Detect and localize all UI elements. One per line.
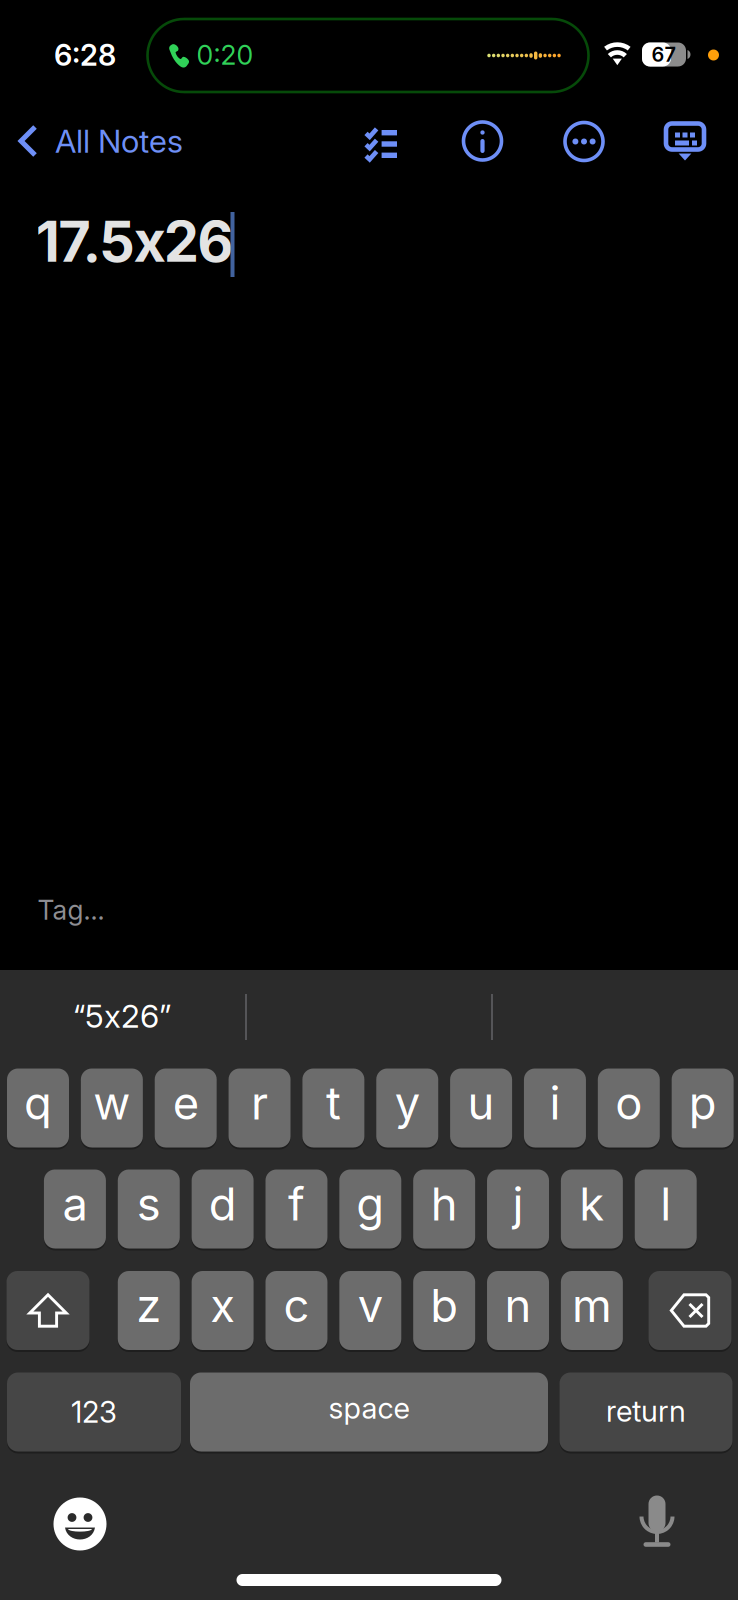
staticText: v (358, 1278, 383, 1333)
staticText: t (326, 1076, 341, 1130)
button[interactable]: e (155, 1067, 217, 1148)
button[interactable]: All Notes (0, 109, 200, 173)
staticText: n (504, 1278, 531, 1333)
button[interactable]: t (302, 1067, 364, 1148)
button[interactable]: Hide Keyboard (654, 109, 716, 175)
staticText: 67 (651, 42, 675, 67)
button[interactable]: h (413, 1168, 475, 1249)
staticText: m (572, 1278, 612, 1333)
button[interactable]: y (376, 1067, 438, 1148)
staticText: f (288, 1177, 305, 1231)
staticText: 17.5x26 (36, 208, 233, 275)
staticText: r (251, 1076, 268, 1130)
staticText: Tag... (37, 894, 104, 926)
staticText: c (283, 1278, 309, 1333)
staticText: 0:20 (196, 39, 253, 71)
button[interactable]: 123 (7, 1371, 181, 1452)
staticText: z (136, 1278, 161, 1333)
staticText: h (431, 1177, 458, 1231)
button[interactable]: s (118, 1168, 180, 1249)
staticText: d (209, 1177, 237, 1231)
button[interactable]: p (672, 1067, 734, 1148)
staticText: return (606, 1393, 686, 1429)
button[interactable]: Shift (6, 1270, 89, 1351)
button[interactable]: x (192, 1270, 254, 1351)
button[interactable]: g (339, 1168, 401, 1249)
staticText: g (356, 1177, 384, 1231)
staticText: 123 (71, 1394, 117, 1430)
staticText: p (689, 1076, 717, 1130)
staticText: y (395, 1076, 420, 1130)
button[interactable]: return (559, 1371, 732, 1452)
staticText: o (615, 1076, 642, 1130)
button[interactable]: f (265, 1168, 327, 1249)
staticText: space (328, 1390, 409, 1426)
button[interactable]: a (44, 1168, 106, 1249)
staticText: u (468, 1076, 495, 1130)
button[interactable]: Emoji (44, 1488, 116, 1560)
button[interactable]: v (339, 1270, 401, 1351)
staticText: w (93, 1076, 130, 1130)
staticText: e (173, 1076, 199, 1130)
staticText: All Notes (55, 122, 183, 160)
staticText: a (62, 1177, 87, 1231)
staticText: “5x26” (73, 997, 171, 1035)
button[interactable]: c (265, 1270, 327, 1351)
button[interactable]: “5x26” (0, 973, 245, 1059)
button[interactable]: o (598, 1067, 660, 1148)
staticText: b (430, 1278, 458, 1333)
button[interactable]: z (118, 1270, 180, 1351)
button[interactable]: n (487, 1270, 549, 1351)
button[interactable]: u (450, 1067, 512, 1148)
staticText: l (660, 1177, 671, 1231)
button[interactable]: q (7, 1067, 69, 1148)
staticText: q (24, 1076, 52, 1130)
button[interactable]: m (561, 1270, 623, 1351)
staticText: j (512, 1177, 523, 1231)
button[interactable]: l (635, 1168, 697, 1249)
button[interactable]: k (561, 1168, 623, 1249)
button[interactable]: space (190, 1371, 548, 1452)
button[interactable]: d (192, 1168, 254, 1249)
button[interactable]: Info (451, 108, 513, 174)
staticText: k (579, 1177, 604, 1231)
button[interactable]: Delete (648, 1270, 731, 1351)
button[interactable]: i (524, 1067, 586, 1148)
staticText: s (137, 1177, 161, 1231)
button[interactable]: w (81, 1067, 143, 1148)
button[interactable]: j (487, 1168, 549, 1249)
staticText: 6:28 (54, 37, 116, 73)
staticText: i (549, 1076, 560, 1130)
button[interactable]: Checklist (346, 108, 416, 174)
button[interactable]: Dictate (621, 1485, 693, 1557)
button[interactable]: b (413, 1270, 475, 1351)
button[interactable]: r (228, 1067, 290, 1148)
button[interactable]: More (553, 108, 615, 174)
staticText: x (210, 1278, 235, 1333)
